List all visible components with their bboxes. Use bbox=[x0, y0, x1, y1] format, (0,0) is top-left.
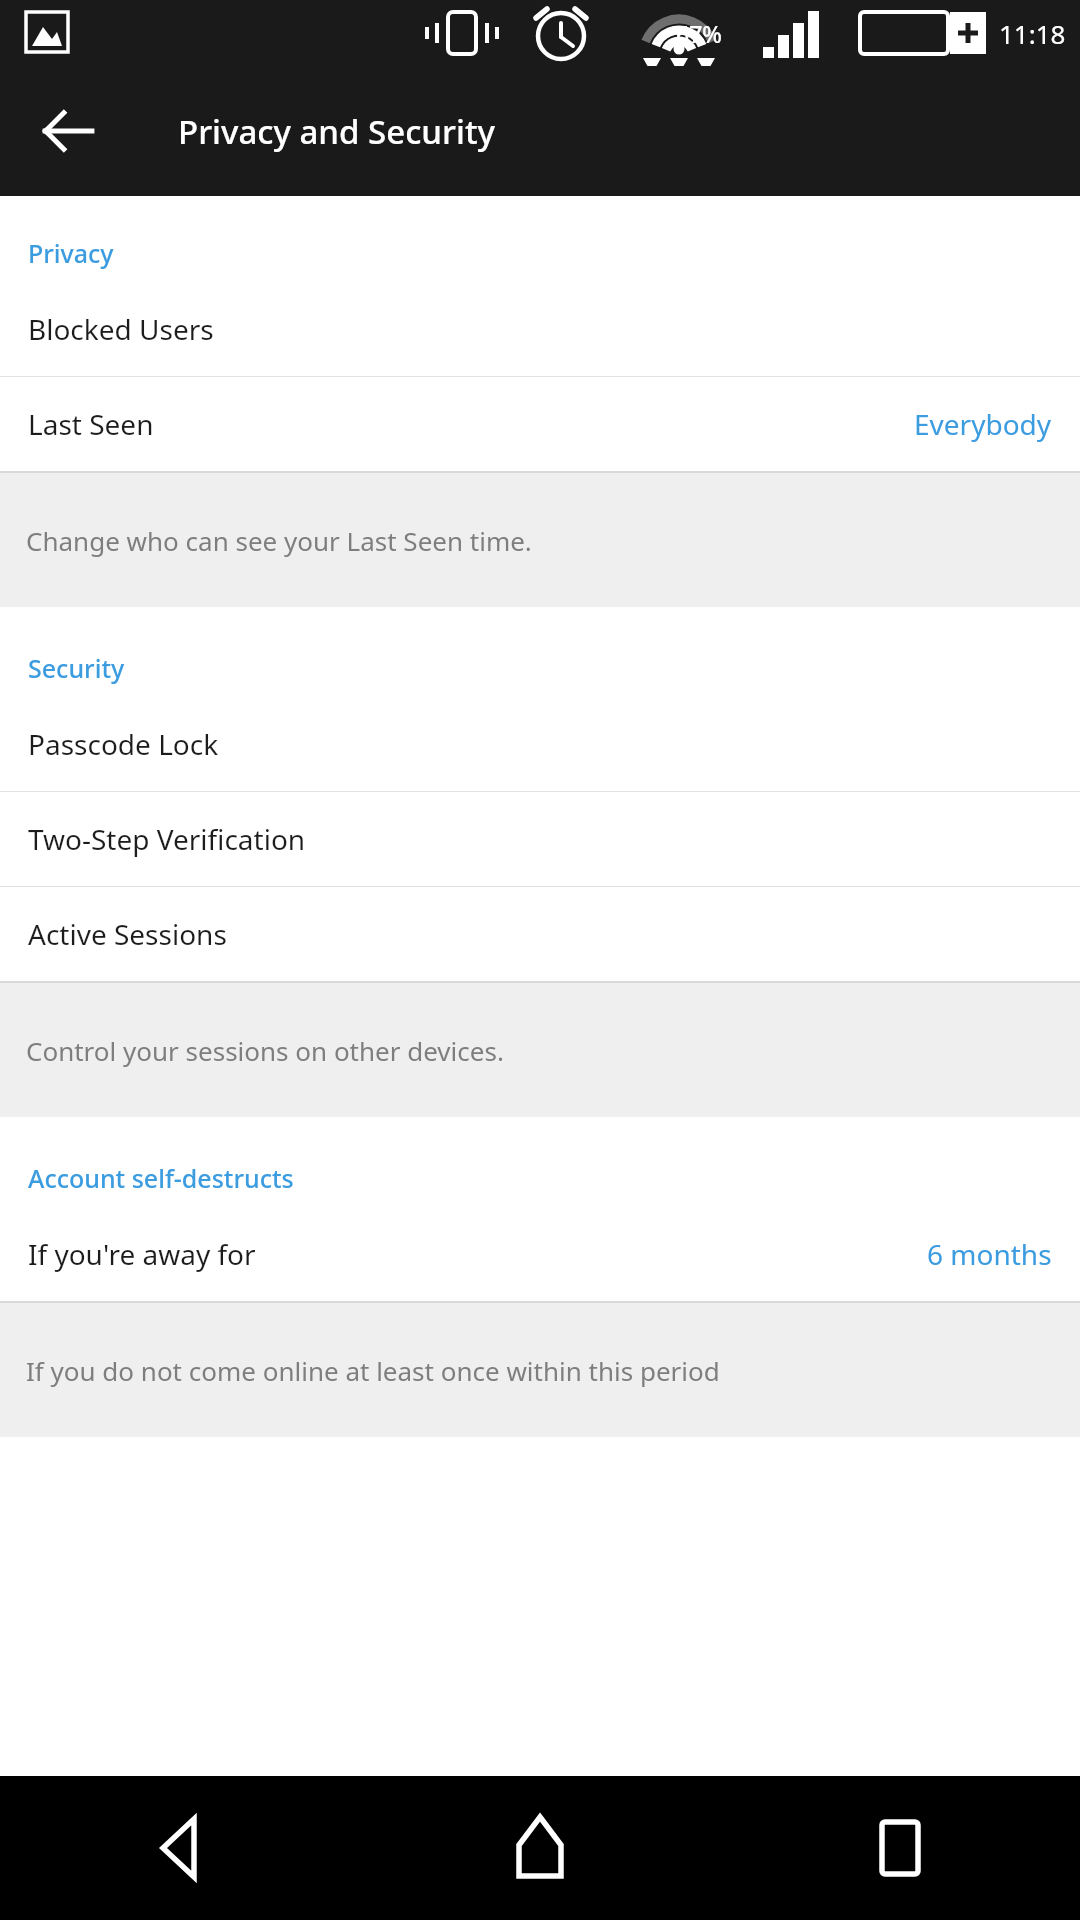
button[interactable]: Last Seen bbox=[0, 377, 1080, 471]
staticText: Account self-destructs bbox=[28, 1161, 294, 1195]
staticText: Change who can see your Last Seen time. bbox=[26, 523, 532, 558]
button[interactable]: If you're away for bbox=[0, 1207, 1080, 1301]
staticText: If you do not come online at least once … bbox=[26, 1353, 720, 1388]
staticText: Last Seen bbox=[28, 405, 914, 443]
button[interactable]: Two-Step Verification bbox=[0, 792, 1080, 886]
button[interactable]: Blocked Users bbox=[0, 282, 1080, 376]
staticText: If you're away for bbox=[28, 1235, 927, 1273]
staticText: 6 months bbox=[927, 1235, 1052, 1273]
staticText: Passcode Lock bbox=[28, 725, 1052, 763]
staticText: Blocked Users bbox=[28, 310, 1052, 348]
button[interactable]: Back bbox=[22, 85, 114, 177]
staticText: Security bbox=[28, 651, 125, 685]
staticText: 67% bbox=[676, 18, 722, 49]
button[interactable]: Passcode Lock bbox=[0, 697, 1080, 791]
button[interactable]: Back bbox=[0, 1776, 360, 1920]
staticText: Control your sessions on other devices. bbox=[26, 1033, 504, 1068]
button[interactable]: Active Sessions bbox=[0, 887, 1080, 981]
staticText: Privacy and Security bbox=[178, 109, 495, 154]
staticText: Everybody bbox=[914, 405, 1052, 443]
button[interactable]: Recent apps bbox=[720, 1776, 1080, 1920]
staticText: Privacy bbox=[28, 236, 114, 270]
staticText: 11:18 bbox=[999, 16, 1066, 51]
staticText: Two-Step Verification bbox=[28, 820, 1052, 858]
staticText: Active Sessions bbox=[28, 915, 1052, 953]
button[interactable]: Home bbox=[360, 1776, 720, 1920]
